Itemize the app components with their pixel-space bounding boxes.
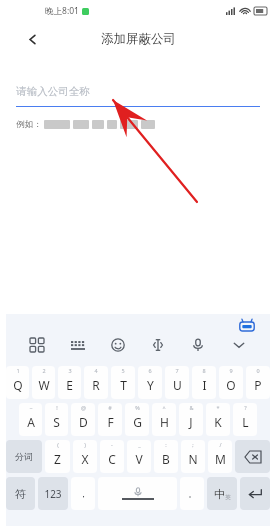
staticText: Z: [54, 451, 61, 467]
staticText: N: [188, 451, 198, 467]
staticText: ~: [29, 404, 33, 411]
staticText: :: [165, 441, 167, 448]
staticText: 4: [94, 367, 98, 374]
staticText: 晚上8:01: [45, 5, 79, 17]
staticText: -: [111, 441, 113, 448]
staticText: 5: [121, 367, 125, 374]
button[interactable]: 6: [138, 366, 162, 399]
button[interactable]: 收起键盘: [224, 330, 254, 360]
staticText: !: [56, 404, 58, 411]
staticText: _: [138, 441, 141, 448]
staticText: #: [108, 404, 112, 411]
staticText: ^: [162, 404, 166, 411]
staticText: S: [53, 414, 60, 430]
button[interactable]: (: [45, 440, 70, 473]
staticText: V: [135, 451, 143, 467]
staticText: 1: [16, 367, 20, 374]
staticText: 中: [214, 487, 225, 501]
button[interactable]: %: [125, 403, 149, 436]
button[interactable]: 123: [38, 477, 68, 510]
staticText: R: [92, 377, 100, 393]
staticText: &: [189, 404, 194, 411]
staticText: W: [38, 377, 50, 393]
button[interactable]: 。: [180, 477, 204, 510]
staticText: F: [107, 414, 114, 430]
button[interactable]: ，: [71, 477, 95, 510]
button[interactable]: 0: [246, 366, 270, 399]
button[interactable]: 2: [32, 366, 55, 399]
staticText: C: [108, 451, 116, 467]
staticText: T: [120, 377, 127, 393]
staticText: J: [189, 414, 193, 430]
button[interactable]: :: [154, 440, 178, 473]
button[interactable]: 分词: [6, 440, 42, 473]
button[interactable]: 光标: [143, 330, 173, 360]
staticText: U: [173, 377, 182, 393]
button[interactable]: 空格: [98, 477, 177, 510]
button[interactable]: 键盘: [63, 330, 93, 360]
staticText: E: [66, 377, 73, 393]
staticText: Y: [147, 377, 154, 393]
button[interactable]: 9: [219, 366, 243, 399]
staticText: K: [214, 414, 222, 430]
button[interactable]: 3: [58, 366, 81, 399]
button[interactable]: *: [206, 403, 230, 436]
button[interactable]: @: [71, 403, 95, 436]
staticText: I: [202, 377, 207, 393]
staticText: ?: [244, 404, 247, 411]
button[interactable]: !: [45, 403, 68, 436]
staticText: P: [254, 377, 262, 393]
button[interactable]: -: [100, 440, 124, 473]
button[interactable]: ~: [19, 403, 42, 436]
button[interactable]: 符: [6, 477, 35, 510]
button[interactable]: 返回: [20, 27, 44, 51]
button[interactable]: ^: [152, 403, 176, 436]
button[interactable]: 请输入公司全称: [16, 80, 260, 102]
staticText: 例如：: [16, 119, 42, 130]
button[interactable]: 表情: [103, 330, 133, 360]
staticText: 2: [42, 367, 46, 374]
staticText: 。: [188, 488, 197, 499]
button[interactable]: 4: [84, 366, 108, 399]
button[interactable]: 语音: [183, 330, 213, 360]
staticText: L: [242, 414, 249, 430]
button[interactable]: 8: [192, 366, 216, 399]
staticText: @: [81, 404, 86, 411]
staticText: 6: [148, 367, 152, 374]
staticText: G: [133, 414, 142, 430]
staticText: H: [160, 414, 169, 430]
button[interactable]: 回车: [240, 477, 270, 510]
button[interactable]: 1: [6, 366, 29, 399]
button[interactable]: 键盘主题: [238, 317, 256, 335]
staticText: 7: [175, 367, 179, 374]
button[interactable]: /: [208, 440, 232, 473]
staticText: 9: [229, 367, 233, 374]
staticText: 3: [68, 367, 72, 374]
staticText: 英: [225, 494, 231, 501]
staticText: (: [57, 441, 59, 448]
button[interactable]: ;: [181, 440, 205, 473]
button[interactable]: 删除: [235, 440, 270, 473]
button[interactable]: &: [179, 403, 203, 436]
button[interactable]: #: [98, 403, 122, 436]
button[interactable]: 中: [207, 477, 237, 510]
button[interactable]: 应用: [22, 330, 52, 360]
staticText: Q: [13, 377, 23, 393]
staticText: A: [27, 414, 35, 430]
button[interactable]: 7: [165, 366, 189, 399]
staticText: ;: [192, 441, 194, 448]
staticText: *: [216, 404, 220, 411]
button[interactable]: _: [127, 440, 151, 473]
staticText: 0: [256, 367, 260, 374]
staticText: 请输入公司全称: [16, 85, 90, 98]
staticText: 符: [15, 487, 26, 501]
staticText: O: [226, 377, 236, 393]
staticText: M: [215, 451, 226, 467]
staticText: D: [79, 414, 88, 430]
button[interactable]: ): [73, 440, 97, 473]
button[interactable]: 5: [111, 366, 135, 399]
staticText: ): [84, 441, 86, 448]
button[interactable]: ?: [233, 403, 257, 436]
staticText: /: [219, 441, 222, 448]
staticText: 8: [202, 367, 206, 374]
